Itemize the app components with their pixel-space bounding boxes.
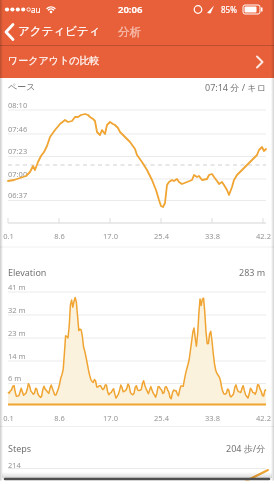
staticText: 14 m — [8, 351, 26, 361]
staticText: アクティビティ — [18, 24, 101, 38]
staticText: 42.2 — [256, 413, 271, 423]
staticText: 07:46 — [8, 124, 28, 134]
button[interactable]: アクティビティ — [0, 19, 104, 45]
staticText: 07:23 — [8, 146, 28, 156]
staticText: 06:37 — [8, 190, 28, 200]
staticText: 23 m — [8, 328, 26, 338]
staticText: ワークアウトの比較 — [8, 54, 100, 67]
staticText: 07:14 分 / キロ — [205, 81, 266, 93]
staticText: 20:06 — [118, 3, 143, 16]
staticText: 8.6 — [54, 413, 65, 423]
staticText: 6 m — [8, 373, 22, 383]
staticText: ペース — [8, 81, 36, 92]
staticText: 42.2 — [256, 231, 271, 241]
staticText: Steps — [8, 442, 32, 454]
staticText: 33.8 — [205, 413, 220, 423]
staticText: 0.1 — [3, 413, 14, 423]
button[interactable]: ワークアウトの比較 — [0, 46, 274, 78]
button[interactable]: 分析 — [112, 19, 152, 45]
staticText: 33.8 — [205, 231, 220, 241]
staticText: 08:10 — [8, 100, 28, 110]
staticText: 204 歩/分 — [226, 442, 266, 454]
staticText: 07:00 — [8, 169, 28, 179]
staticText: Elevation — [8, 266, 47, 278]
staticText: 32 m — [8, 305, 26, 315]
staticText: 283 m — [239, 266, 266, 278]
staticText: 85% — [221, 4, 237, 15]
staticText: au — [31, 4, 41, 15]
staticText: 0.1 — [3, 231, 14, 241]
staticText: 25.4 — [154, 231, 169, 241]
staticText: 分析 — [118, 25, 141, 39]
staticText: 41 m — [8, 282, 26, 292]
staticText: 214 — [8, 460, 21, 470]
staticText: 25.4 — [154, 413, 169, 423]
staticText: 17.0 — [103, 231, 118, 241]
staticText: 8.6 — [54, 231, 65, 241]
staticText: 17.0 — [103, 413, 118, 423]
